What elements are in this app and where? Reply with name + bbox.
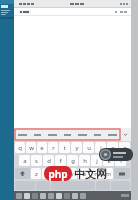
button[interactable]: Taskbar item — [48, 193, 54, 199]
button[interactable]: Expand suggestions — [122, 131, 129, 138]
staticText: u — [87, 144, 91, 152]
button[interactable]: r — [48, 142, 58, 153]
button[interactable]: b — [78, 168, 89, 179]
staticText: f — [59, 157, 62, 165]
staticText: g — [71, 157, 75, 165]
button[interactable]: f — [55, 155, 66, 166]
staticText: z — [35, 170, 38, 178]
button[interactable]: g — [67, 155, 78, 166]
staticText: m — [105, 170, 111, 178]
button[interactable]: Taskbar item — [32, 193, 38, 199]
staticText: x — [46, 170, 50, 178]
button[interactable]: Delete — [114, 168, 130, 179]
button[interactable]: Shift — [15, 168, 30, 179]
button[interactable]: u — [83, 142, 94, 153]
staticText: c — [58, 170, 61, 178]
button[interactable]: e — [37, 142, 47, 153]
button[interactable]: Taskbar item — [80, 193, 86, 199]
staticText: i — [100, 144, 102, 152]
button[interactable]: Floating assistant — [99, 148, 133, 161]
staticText: o — [111, 144, 115, 152]
staticText: q — [18, 144, 22, 152]
button[interactable]: q — [15, 142, 25, 153]
staticText: w — [29, 144, 34, 152]
button[interactable]: n — [90, 168, 101, 179]
staticText: t — [63, 144, 66, 152]
staticText: y — [75, 144, 79, 152]
button[interactable]: y — [71, 142, 82, 153]
button[interactable]: Taskbar item — [24, 193, 30, 199]
staticText: s — [35, 157, 38, 165]
button[interactable]: a — [19, 155, 30, 166]
button[interactable]: w — [26, 142, 36, 153]
staticText: e — [40, 144, 44, 152]
staticText: 中文网 — [74, 167, 107, 181]
staticText: p — [123, 144, 127, 152]
button[interactable]: h — [79, 155, 90, 166]
staticText: a — [23, 157, 27, 165]
button[interactable]: Taskbar item — [16, 193, 22, 199]
staticText: d — [47, 157, 51, 165]
button[interactable]: x — [42, 168, 53, 179]
button[interactable]: m — [102, 168, 113, 179]
staticText: j — [96, 157, 98, 165]
staticText: b — [82, 170, 86, 178]
other: Toolbar actions — [115, 11, 128, 13]
staticText: n — [94, 170, 98, 178]
button[interactable]: Taskbar item — [64, 193, 70, 199]
button[interactable]: p — [119, 142, 130, 153]
button[interactable]: z — [31, 168, 41, 179]
button[interactable]: o — [107, 142, 118, 153]
button[interactable]: Taskbar item — [56, 193, 62, 199]
button[interactable]: Taskbar item — [72, 193, 78, 199]
button[interactable]: t — [59, 142, 70, 153]
staticText: h — [83, 157, 87, 165]
staticText: r — [52, 144, 55, 152]
button[interactable]: d — [43, 155, 54, 166]
staticText: l — [120, 157, 122, 165]
button[interactable]: v — [66, 168, 77, 179]
button[interactable]: Tab — [18, 10, 31, 14]
button[interactable]: j — [91, 155, 102, 166]
button[interactable]: s — [31, 155, 42, 166]
button[interactable]: l — [115, 155, 126, 166]
button[interactable]: Taskbar item — [40, 193, 46, 199]
staticText: k — [107, 157, 111, 165]
staticText: php — [48, 167, 68, 181]
button[interactable]: c — [54, 168, 65, 179]
other: Window controls — [120, 3, 129, 5]
staticText: v — [70, 170, 74, 178]
button[interactable]: k — [103, 155, 114, 166]
button[interactable]: i — [95, 142, 106, 153]
